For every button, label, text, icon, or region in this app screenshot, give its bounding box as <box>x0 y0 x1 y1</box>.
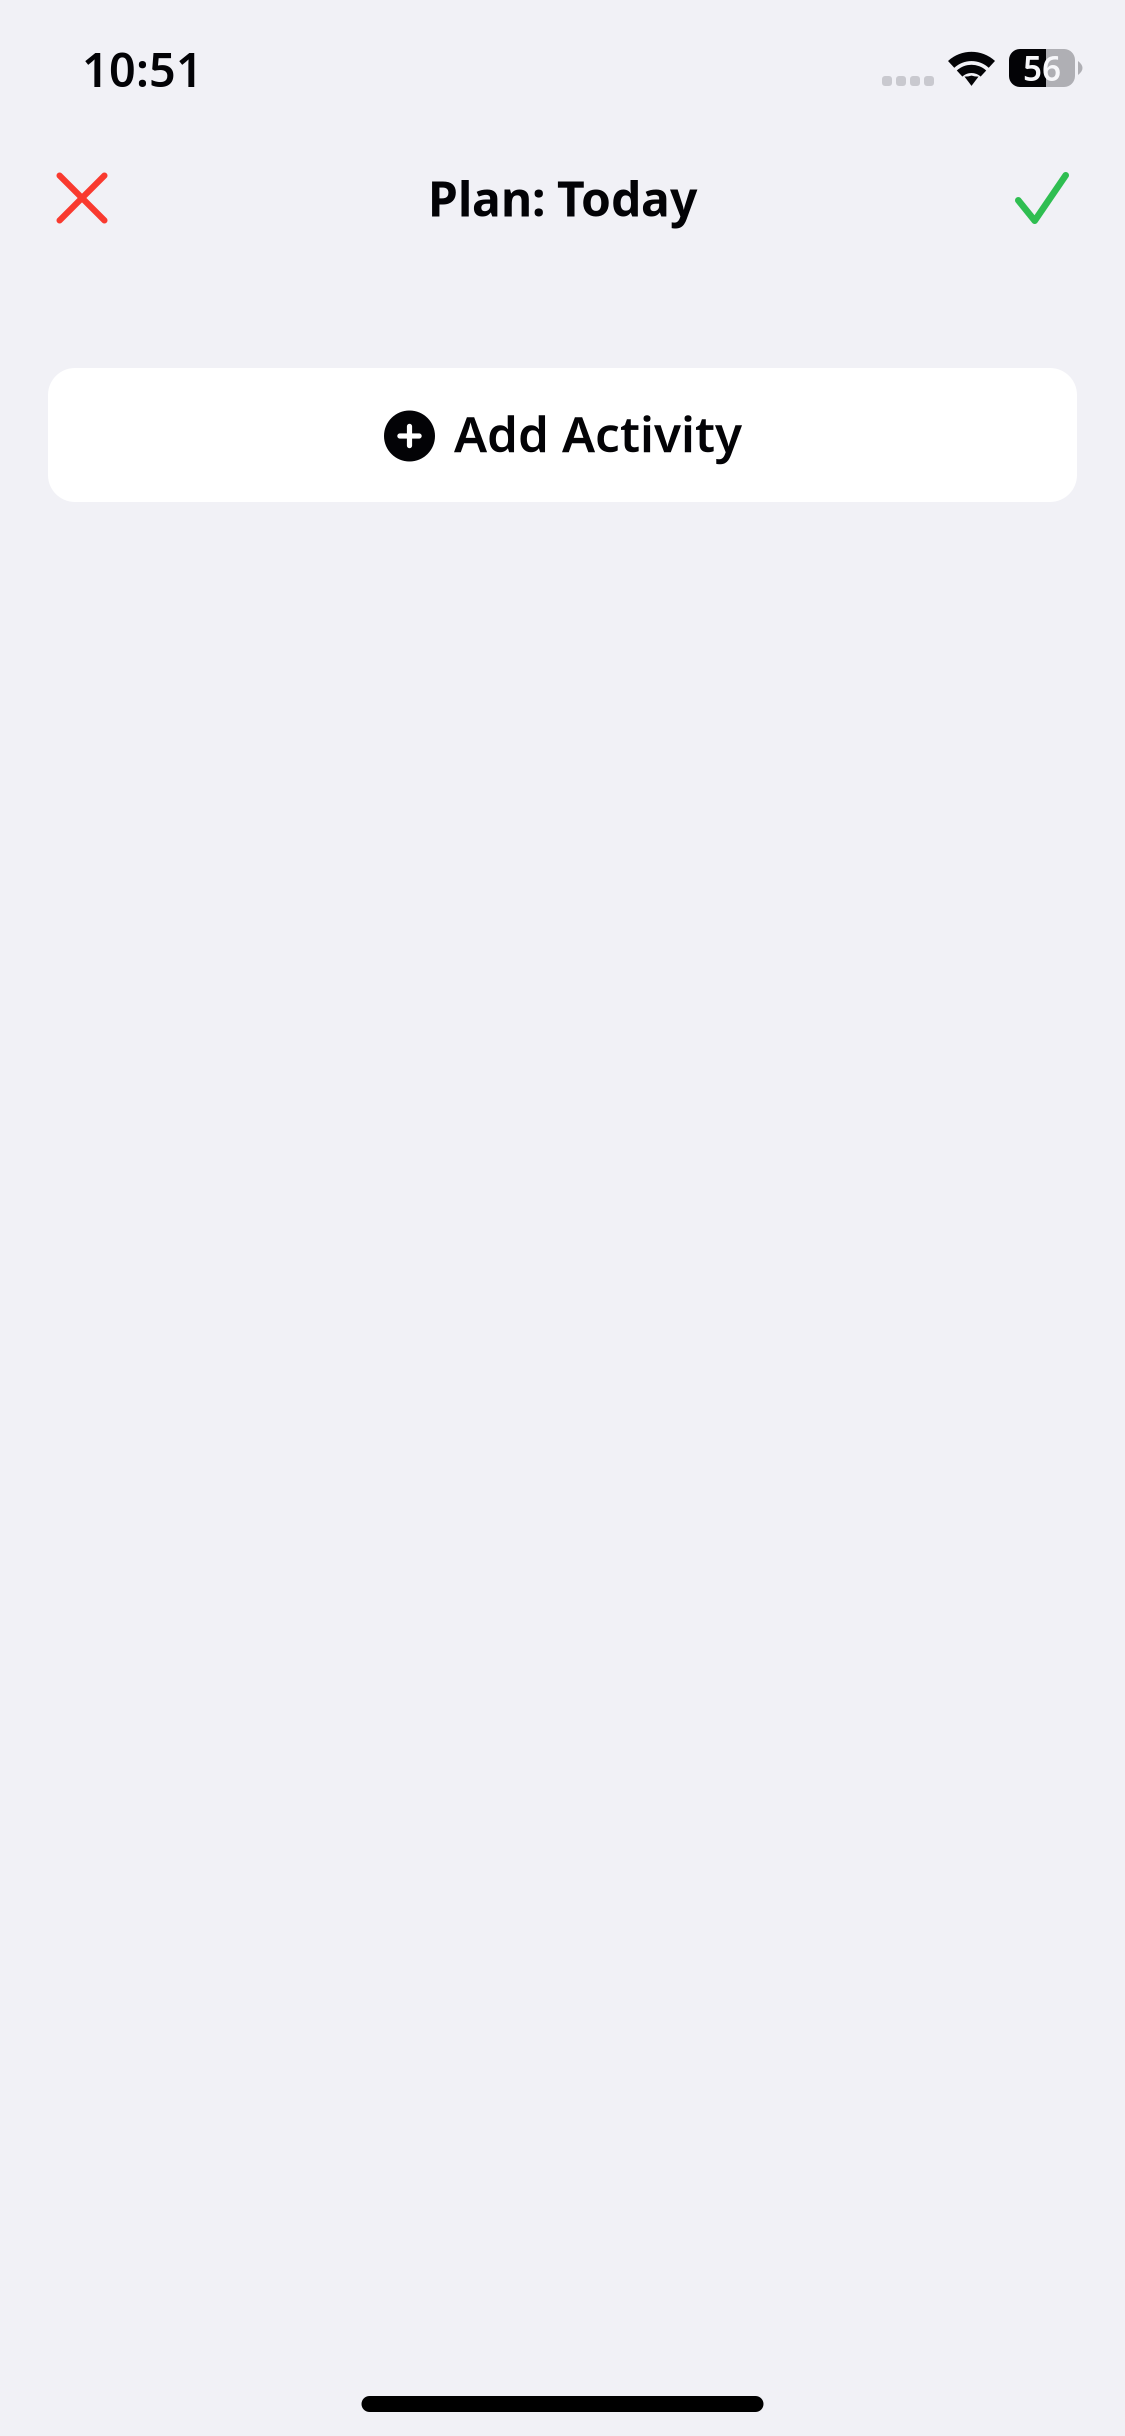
staticText: 10:51 <box>82 38 203 100</box>
button[interactable]: Close <box>38 154 126 242</box>
staticText: 56 <box>1023 46 1061 90</box>
staticText: Add Activity <box>454 400 742 466</box>
staticText: Plan: Today <box>428 166 697 230</box>
button[interactable]: Add Activity <box>48 368 1077 502</box>
button[interactable]: Done <box>998 154 1086 242</box>
